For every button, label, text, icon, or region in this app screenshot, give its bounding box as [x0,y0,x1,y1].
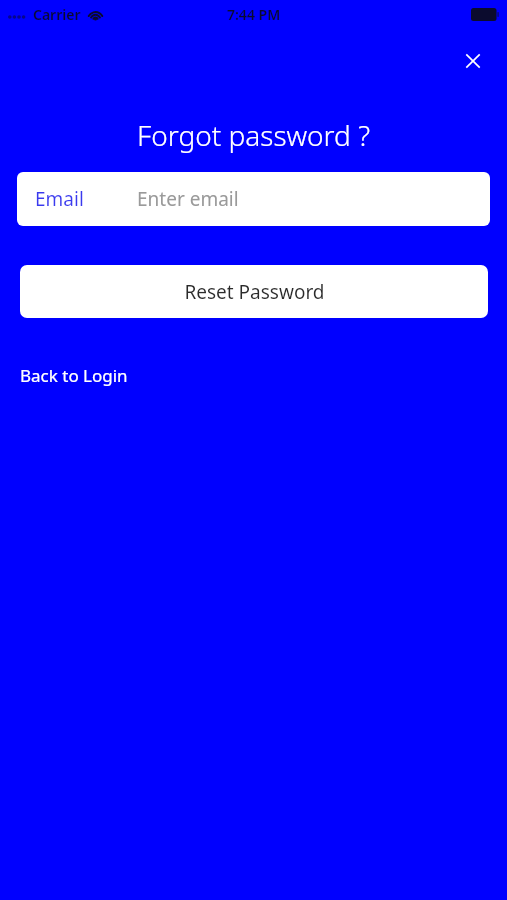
staticText: 7:44 PM [227,5,281,24]
staticText: Reset Password [184,279,325,305]
button[interactable]: Close [453,41,493,81]
staticText: Enter email [137,186,239,212]
staticText: Carrier [33,5,81,24]
button[interactable]: Reset Password [20,265,488,318]
button[interactable]: Email [17,172,490,226]
button[interactable]: Back to Login [20,362,128,389]
staticText: Email [35,186,84,212]
staticText: Forgot password ? [137,116,370,154]
staticText: Back to Login [20,364,128,387]
